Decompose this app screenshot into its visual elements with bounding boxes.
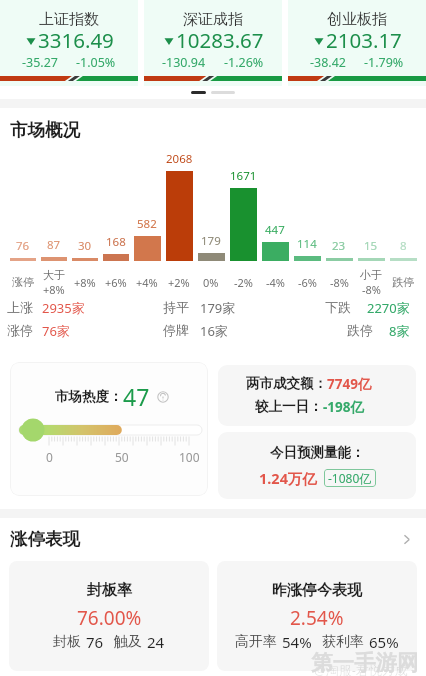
staticText: 涨停表现 — [10, 528, 80, 550]
staticText: 1671 — [230, 168, 257, 184]
staticText: 0% — [203, 275, 219, 290]
staticText: 2270家 — [367, 299, 410, 317]
staticText: -6% — [298, 275, 317, 290]
staticText: 2068 — [166, 151, 193, 167]
staticText: 114 — [297, 236, 317, 252]
staticText: 跌停 — [392, 275, 414, 289]
staticText: 76 — [86, 632, 104, 652]
staticText: 65% — [369, 632, 399, 652]
staticText: 上涨 — [7, 299, 33, 315]
staticText: 15 — [364, 238, 378, 254]
staticText: 大于 — [43, 268, 65, 282]
staticText: 8 — [400, 238, 407, 254]
staticText: +8% — [43, 282, 65, 297]
staticText: 582 — [137, 216, 157, 232]
staticText: 179 — [201, 233, 221, 249]
staticText: 76家 — [42, 322, 70, 340]
staticText: 第一手游网 — [311, 649, 419, 676]
staticText: 447 — [265, 222, 285, 238]
button[interactable]: 上证指数 — [0, 0, 138, 86]
staticText: 市场概况 — [10, 119, 80, 141]
staticText: 涨停 — [7, 322, 33, 338]
staticText: 168 — [106, 234, 126, 250]
staticText: 54% — [282, 632, 312, 652]
staticText: 跌停 — [347, 322, 373, 338]
staticText: 停牌 — [163, 322, 189, 338]
button[interactable]: 昨涨停今表现 — [217, 561, 417, 671]
staticText: 封板 — [53, 633, 81, 651]
staticText: -8% — [362, 282, 381, 297]
staticText: 2103.17 — [326, 26, 402, 54]
button[interactable]: 深证成指 — [144, 0, 282, 86]
staticText: -35.27 — [22, 54, 58, 71]
staticText: 两市成交额： — [246, 375, 327, 392]
staticText: 16家 — [200, 322, 228, 340]
staticText: 2935家 — [42, 299, 85, 317]
staticText: 上证指数 — [39, 10, 99, 29]
staticText: -130.94 — [162, 54, 206, 71]
staticText: 下跌 — [325, 299, 351, 315]
staticText: 179家 — [200, 299, 236, 317]
staticText: 创业板指 — [327, 10, 387, 29]
staticText: 较上一日： — [255, 398, 323, 415]
button[interactable]: 市场热度： — [10, 362, 208, 496]
staticText: +4% — [136, 275, 158, 290]
staticText: 3316.49 — [38, 26, 114, 54]
staticText: 封板率 — [87, 581, 132, 600]
staticText: 触及 — [114, 633, 142, 651]
staticText: -1.26% — [224, 54, 264, 71]
staticText: @淘服-君悦方成 — [314, 661, 408, 676]
staticText: -8% — [330, 275, 349, 290]
staticText: -2% — [234, 275, 253, 290]
staticText: 小于 — [360, 268, 382, 282]
button[interactable]: 涨停表现 — [0, 518, 426, 560]
button[interactable]: 两市成交额： — [218, 365, 416, 426]
staticText: 100 — [179, 449, 200, 465]
staticText: 23 — [332, 238, 346, 254]
staticText: -4% — [266, 275, 285, 290]
button[interactable]: 创业板指 — [288, 0, 426, 86]
staticText: 高开率 — [235, 633, 277, 651]
staticText: 持平 — [163, 299, 189, 315]
staticText: 10283.67 — [176, 26, 264, 54]
staticText: 76.00% — [77, 605, 142, 631]
staticText: 47 — [123, 381, 150, 412]
staticText: 今日预测量能： — [270, 444, 365, 461]
staticText: +6% — [105, 275, 127, 290]
staticText: +8% — [74, 275, 96, 290]
staticText: 1.24万亿 — [259, 468, 317, 488]
staticText: -198亿 — [323, 398, 364, 416]
staticText: 涨停 — [12, 275, 34, 289]
staticText: +2% — [168, 275, 190, 290]
staticText: -1.79% — [364, 54, 404, 71]
staticText: -38.42 — [310, 54, 346, 71]
staticText: 昨涨停今表现 — [272, 581, 362, 600]
staticText: 0 — [46, 449, 53, 465]
button[interactable]: 封板率 — [9, 561, 209, 671]
staticText: 50 — [115, 449, 129, 465]
staticText: 市场热度： — [55, 388, 123, 405]
staticText: 87 — [47, 237, 61, 253]
staticText: 深证成指 — [183, 10, 243, 29]
staticText: 30 — [78, 238, 92, 254]
staticText: 76 — [16, 238, 30, 254]
staticText: -1080亿 — [328, 470, 372, 486]
staticText: 2.54% — [290, 605, 344, 631]
other: 查看更多涨停表现 — [398, 531, 415, 548]
button[interactable]: 今日预测量能： — [218, 432, 416, 499]
staticText: -1.05% — [76, 54, 116, 71]
staticText: 24 — [147, 632, 165, 652]
staticText: 7749亿 — [327, 375, 372, 393]
staticText: 8家 — [389, 322, 410, 340]
staticText: 获利率 — [322, 633, 364, 651]
